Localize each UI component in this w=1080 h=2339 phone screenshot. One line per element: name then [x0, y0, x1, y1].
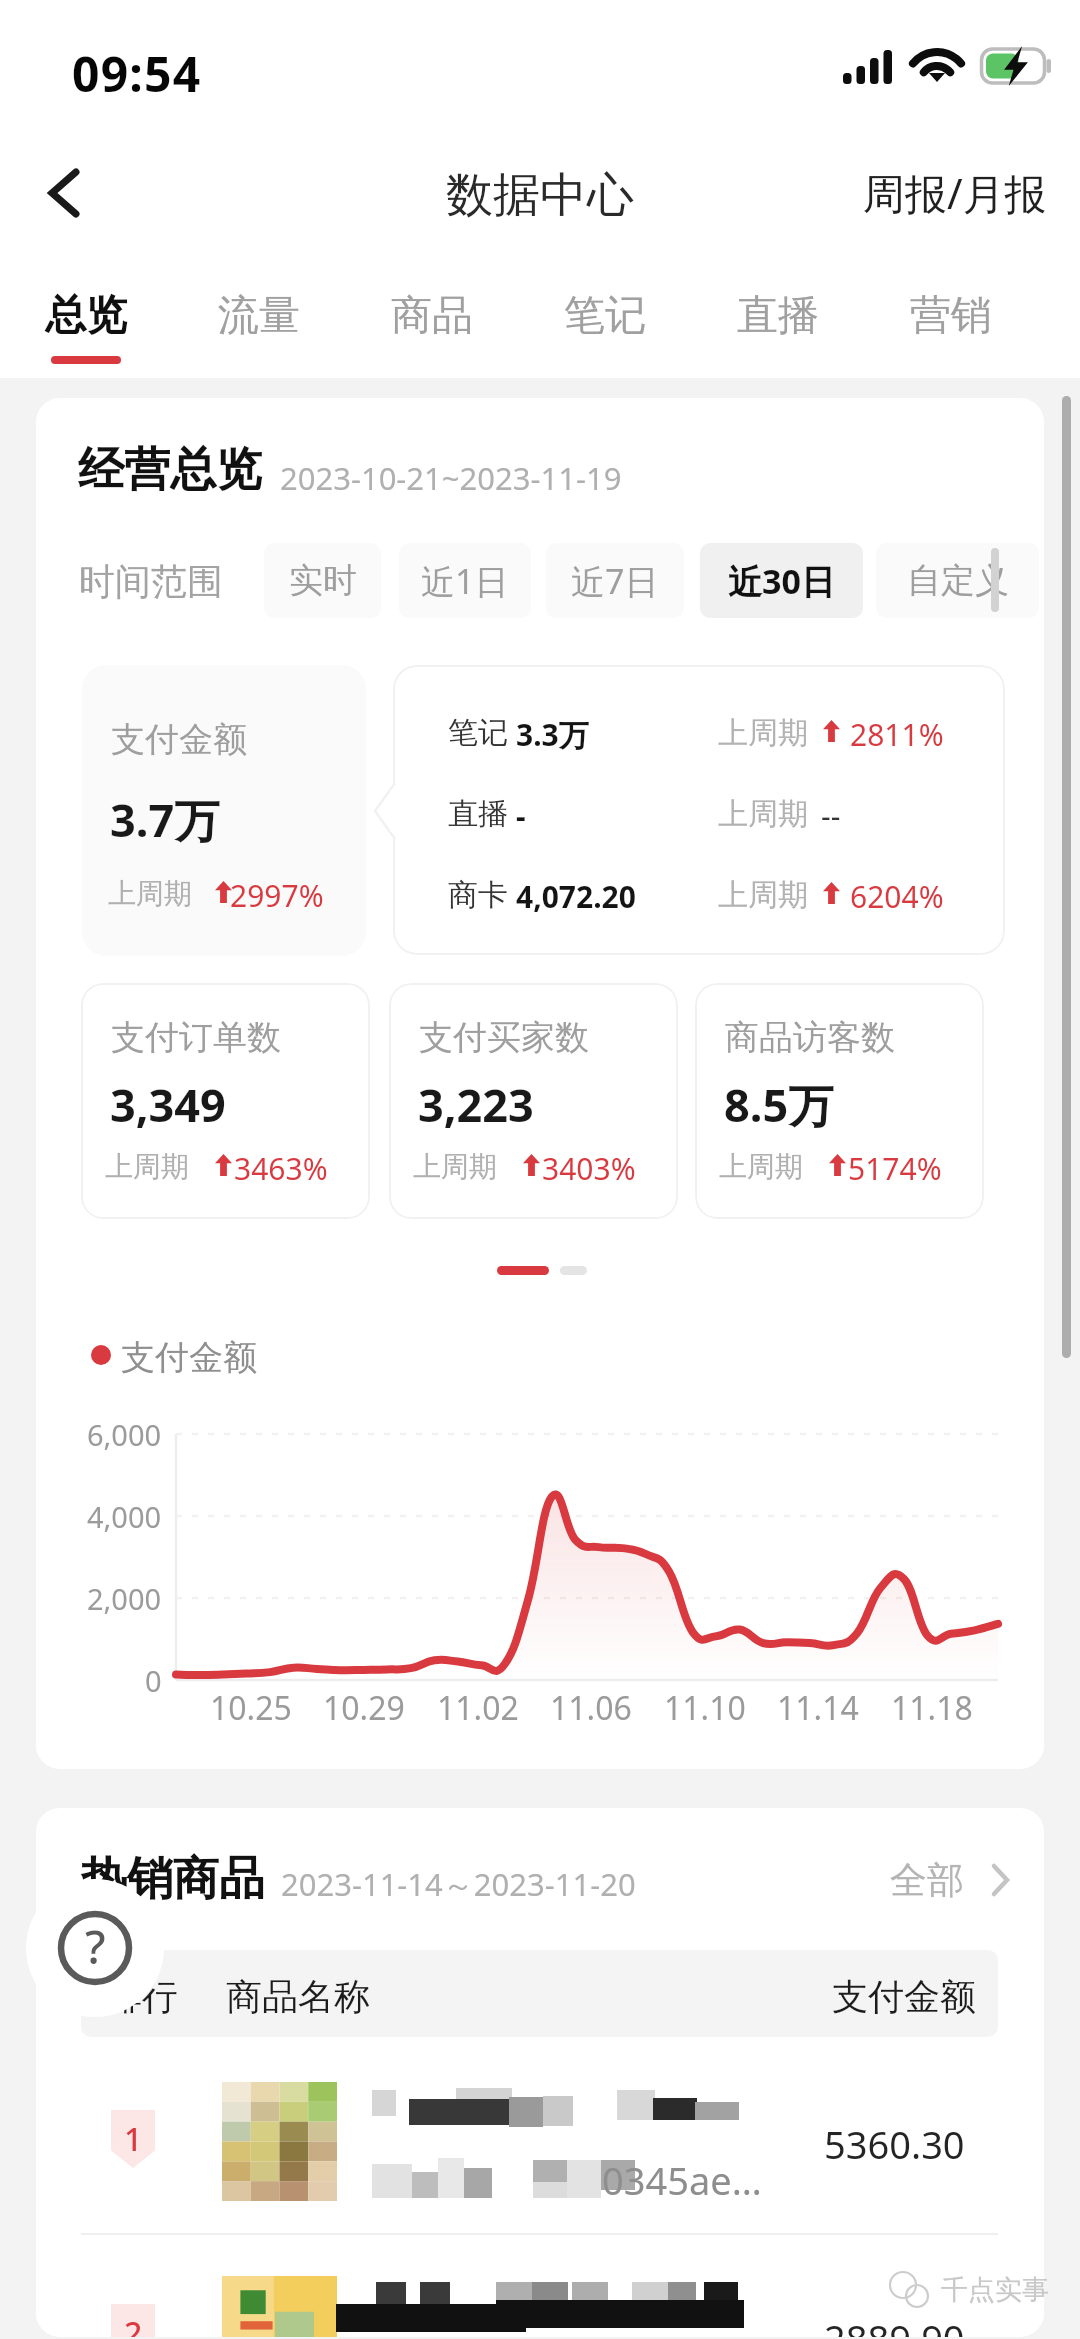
staticText: 实时	[289, 559, 357, 602]
button[interactable]: 全部	[890, 1848, 1012, 1912]
staticText: 2023-10-21~2023-11-19	[280, 457, 622, 499]
staticText: 2997%	[230, 875, 324, 916]
button[interactable]: Help	[26, 1879, 164, 2017]
staticText: 自定义	[907, 559, 1009, 602]
staticText: 6204%	[850, 876, 944, 917]
staticText: 2023-11-14～2023-11-20	[281, 1863, 636, 1905]
staticText: 2889.90	[824, 2312, 965, 2337]
button[interactable]: 自定义	[876, 543, 1039, 618]
staticText: 3.7万	[110, 789, 220, 850]
staticText: 流量	[218, 290, 300, 342]
button[interactable]: 笔记	[393, 665, 1005, 955]
button[interactable]: Back	[8, 130, 120, 255]
button[interactable]: 商品访客数	[695, 983, 984, 1219]
staticText: 2,000	[87, 1579, 162, 1618]
staticText: 经营总览	[78, 441, 262, 499]
button[interactable]: 周报/月报	[850, 130, 1060, 255]
staticText: 3,349	[110, 1074, 226, 1135]
staticText: 上周期	[105, 1149, 189, 1184]
staticText: 周报/月报	[863, 164, 1047, 221]
staticText: 近1日	[421, 558, 509, 604]
staticText: 上周期	[719, 1149, 803, 1184]
staticText: 11.18	[891, 1686, 973, 1726]
staticText: 热销商品	[81, 1850, 265, 1908]
staticText: 营销	[910, 290, 992, 342]
staticText: 数据中心	[446, 166, 634, 225]
button[interactable]: 实时	[264, 543, 381, 618]
staticText: 6,000	[87, 1415, 162, 1454]
staticText: 支付金额	[832, 1974, 976, 2019]
staticText: 3463%	[234, 1148, 328, 1189]
button[interactable]: 商品	[346, 255, 518, 378]
staticText: 上周期	[413, 1149, 497, 1184]
button[interactable]: 2	[36, 2248, 1044, 2337]
staticText: 3,223	[418, 1074, 534, 1135]
staticText: 09:54	[72, 41, 202, 106]
staticText: 11.06	[550, 1686, 632, 1726]
staticText: 近30日	[728, 558, 835, 604]
staticText: 3.3万	[516, 714, 589, 755]
staticText: 排行	[106, 1974, 178, 2019]
staticText: 笔记	[564, 290, 646, 342]
staticText: 直播	[448, 795, 508, 833]
staticText: 上周期	[718, 795, 808, 833]
staticText: 商品	[391, 290, 473, 342]
staticText: 11.02	[437, 1686, 519, 1726]
button[interactable]: 流量	[173, 255, 345, 378]
staticText: 支付买家数	[419, 1016, 589, 1059]
staticText: ?	[85, 1915, 106, 1978]
button[interactable]: 近7日	[546, 543, 684, 618]
button[interactable]: 直播	[692, 255, 864, 378]
staticText: 上周期	[718, 876, 808, 914]
staticText: 千点实事	[941, 2273, 1049, 2307]
staticText: 2	[124, 2311, 143, 2337]
staticText: 支付金额	[111, 718, 247, 761]
staticText: 5360.30	[824, 2118, 965, 2170]
button[interactable]: 支付买家数	[389, 983, 678, 1219]
staticText: 笔记	[448, 714, 508, 752]
button[interactable]: 近30日	[700, 543, 863, 618]
staticText: 10.25	[210, 1686, 292, 1726]
staticText: 支付订单数	[111, 1016, 281, 1059]
button[interactable]: 1	[36, 2054, 1044, 2240]
button[interactable]: 支付金额	[82, 665, 366, 956]
staticText: 4,072.20	[516, 876, 636, 917]
staticText: 支付金额	[121, 1336, 257, 1379]
staticText: 3403%	[542, 1148, 636, 1189]
staticText: 11.14	[777, 1686, 859, 1726]
staticText: 直播	[737, 290, 819, 342]
staticText: 商品名称	[226, 1974, 370, 2019]
staticText: 总览	[45, 290, 127, 342]
staticText: 商品访客数	[725, 1016, 895, 1059]
staticText: 11.10	[664, 1686, 746, 1726]
staticText: 时间范围	[79, 559, 223, 604]
button[interactable]: 笔记	[519, 255, 691, 378]
button[interactable]: 支付订单数	[81, 983, 370, 1219]
staticText: 商卡	[448, 876, 508, 914]
staticText: -	[516, 795, 526, 836]
staticText: 4,000	[87, 1497, 162, 1536]
staticText: 1	[124, 2117, 143, 2161]
staticText: 0	[145, 1661, 162, 1700]
staticText: 2811%	[850, 714, 944, 755]
staticText: 10.29	[323, 1686, 405, 1726]
staticText: --	[821, 795, 841, 836]
staticText: 上周期	[108, 876, 192, 911]
button[interactable]: 营销	[865, 255, 1037, 378]
button[interactable]: 总览	[0, 255, 172, 378]
staticText: 0345ae…	[602, 2154, 762, 2206]
staticText: 上周期	[718, 714, 808, 752]
staticText: 全部	[890, 1857, 964, 1904]
staticText: 8.5万	[724, 1074, 834, 1135]
button[interactable]: 近1日	[399, 543, 531, 618]
staticText: 近7日	[571, 558, 659, 604]
staticText: 5174%	[848, 1148, 942, 1189]
